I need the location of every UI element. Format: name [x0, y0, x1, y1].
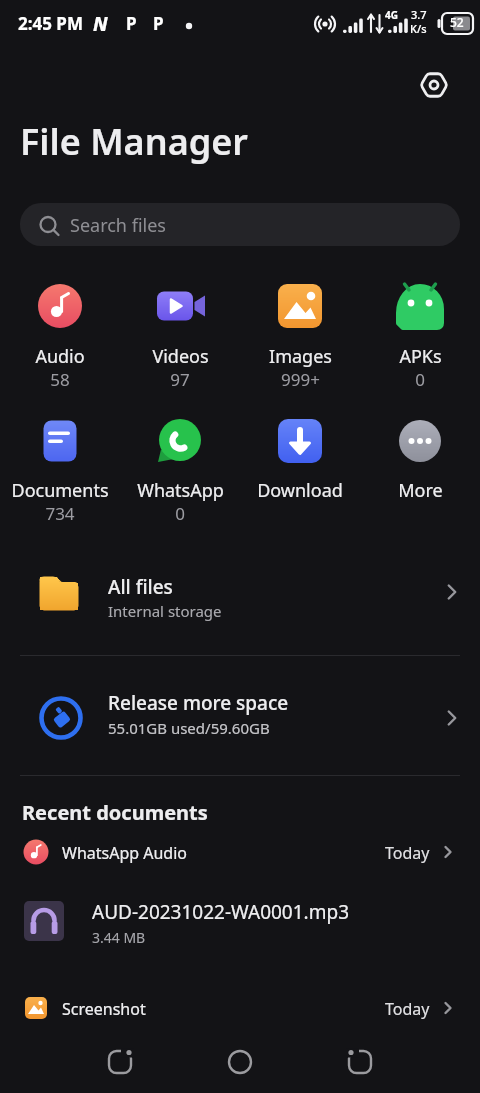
button[interactable]	[260, 280, 340, 390]
staticText: Internal storage	[108, 601, 222, 621]
staticText: 3.44 MB	[92, 928, 146, 947]
staticText: Release more space	[108, 690, 289, 716]
button[interactable]	[20, 834, 460, 872]
button[interactable]	[20, 560, 460, 630]
button[interactable]	[330, 1036, 390, 1088]
button[interactable]	[260, 414, 340, 524]
staticText: More	[398, 478, 443, 503]
staticText: 734	[45, 502, 75, 525]
staticText: Recent documents	[22, 799, 208, 826]
staticText: AUD-20231022-WA0001.mp3	[92, 899, 350, 925]
staticText: K/s	[410, 21, 427, 36]
button[interactable]	[20, 203, 460, 246]
button[interactable]	[20, 684, 460, 754]
button[interactable]	[90, 1036, 150, 1088]
staticText: 2:45 PM	[18, 12, 83, 35]
staticText: 0	[175, 502, 185, 525]
staticText: WhatsApp Audio	[62, 842, 188, 864]
button[interactable]	[210, 1036, 270, 1088]
staticText: Videos	[152, 344, 209, 369]
staticText: 58	[50, 368, 70, 391]
staticText: Audio	[35, 344, 85, 369]
staticText: Documents	[11, 478, 109, 503]
staticText: APKs	[399, 344, 442, 369]
button[interactable]	[20, 414, 100, 524]
staticText: Today	[385, 842, 430, 864]
staticText: 97	[170, 368, 190, 391]
staticText: WhatsApp	[137, 478, 224, 503]
button[interactable]	[410, 62, 458, 108]
staticText: 999+	[281, 368, 320, 391]
button[interactable]	[20, 892, 460, 950]
staticText: Download	[257, 478, 343, 503]
staticText: 55.01GB used/59.60GB	[108, 718, 270, 738]
staticText: Today	[385, 998, 430, 1020]
button[interactable]	[380, 280, 460, 390]
button[interactable]	[140, 280, 220, 390]
button[interactable]	[380, 414, 460, 524]
staticText: P	[126, 12, 137, 35]
button[interactable]	[20, 990, 460, 1028]
staticText: N	[93, 11, 108, 37]
staticText: Images	[269, 344, 332, 369]
staticText: All files	[108, 574, 173, 600]
staticText: 52	[450, 14, 464, 30]
staticText: Screenshot	[62, 998, 146, 1020]
staticText: 4G	[385, 8, 398, 22]
button[interactable]	[20, 280, 100, 390]
staticText: 3.7	[411, 7, 427, 22]
staticText: 0	[415, 368, 425, 391]
button[interactable]	[140, 414, 220, 524]
staticText: File Manager	[20, 117, 248, 166]
staticText: P	[153, 12, 164, 35]
staticText: Search files	[70, 213, 166, 238]
